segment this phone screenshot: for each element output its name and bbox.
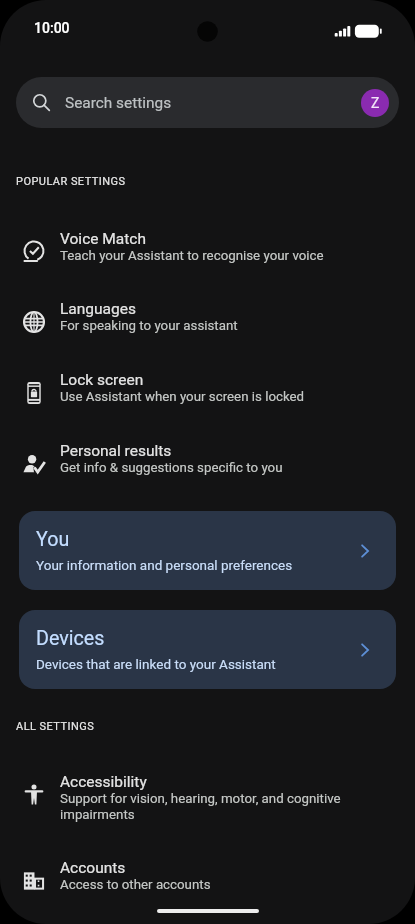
button[interactable]: Google Account — [361, 89, 389, 117]
staticText: For speaking to your assistant — [60, 318, 238, 334]
staticText: Accessibility — [60, 773, 147, 791]
staticText: Lock screen — [60, 371, 144, 389]
staticText: Personal results — [60, 442, 172, 460]
button[interactable]: Search settings — [16, 77, 399, 128]
button[interactable]: Accessibility — [0, 767, 415, 833]
staticText: ALL SETTINGS — [16, 720, 95, 733]
staticText: Z — [371, 95, 380, 111]
staticText: Access to other accounts — [60, 877, 211, 893]
button[interactable]: Voice Match — [0, 224, 415, 274]
button[interactable]: Personal results — [0, 436, 415, 486]
staticText: Search settings — [65, 94, 172, 112]
staticText: 10:00 — [34, 20, 70, 36]
button[interactable]: Languages — [0, 294, 415, 344]
staticText: Languages — [60, 300, 136, 318]
staticText: Use Assistant when your screen is locked — [60, 389, 305, 405]
staticText: Devices — [36, 627, 105, 650]
staticText: Get info & suggestions specific to you — [60, 460, 283, 476]
staticText: Teach your Assistant to recognise your v… — [60, 248, 324, 264]
button[interactable]: Lock screen — [0, 365, 415, 415]
button[interactable]: Devices — [19, 610, 396, 689]
staticText: Devices that are linked to your Assistan… — [36, 656, 276, 672]
button[interactable]: Accounts — [0, 853, 415, 903]
staticText: Support for vision, hearing, motor, and … — [60, 791, 391, 823]
staticText: Voice Match — [60, 230, 146, 248]
staticText: Accounts — [60, 859, 126, 877]
staticText: POPULAR SETTINGS — [16, 175, 126, 188]
staticText: Your information and personal preference… — [36, 557, 293, 573]
staticText: You — [36, 528, 70, 551]
button[interactable]: You — [19, 511, 396, 590]
